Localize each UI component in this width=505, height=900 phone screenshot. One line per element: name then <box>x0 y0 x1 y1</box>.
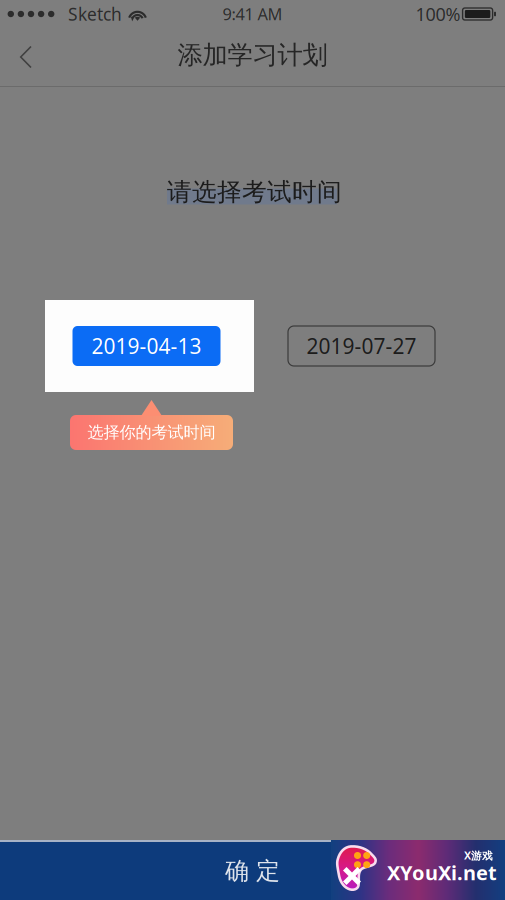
staticText: 2019-07-27 <box>306 332 416 360</box>
button[interactable]: Back <box>0 28 52 86</box>
staticText: 选择你的考试时间 <box>87 422 215 443</box>
button[interactable]: 确 定 <box>0 842 505 900</box>
staticText: XYouXi.net <box>387 859 497 886</box>
staticText: 请选择考试时间 <box>167 176 342 207</box>
staticText: X游戏 <box>464 848 493 863</box>
staticText: 9:41 AM <box>222 3 282 25</box>
button[interactable]: 2019-07-27 <box>288 326 435 366</box>
staticText: 2019-04-13 <box>91 332 201 360</box>
staticText: 添加学习计划 <box>177 39 327 71</box>
button[interactable]: 2019-04-13 <box>45 300 254 392</box>
staticText: 确 定 <box>225 856 280 886</box>
staticText: Sketch <box>68 2 122 26</box>
staticText: 100% <box>416 2 461 26</box>
